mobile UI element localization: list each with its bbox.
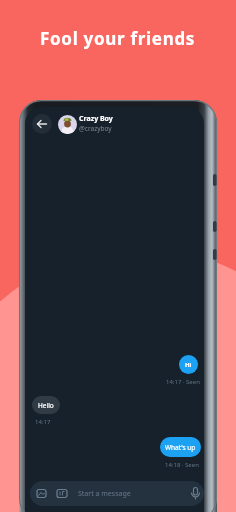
staticText: Hello — [38, 401, 54, 410]
button[interactable]: Start a message — [30, 481, 204, 506]
staticText: Crazy Boy — [79, 114, 113, 124]
staticText: Start a message — [78, 489, 131, 499]
button[interactable]: Hi — [179, 355, 198, 374]
staticText: 14:17 · Seen — [166, 378, 200, 386]
staticText: Fool your friends — [40, 27, 196, 50]
staticText: 14:18 · Seen — [165, 461, 199, 469]
staticText: 14:17 — [35, 418, 51, 426]
button[interactable] — [58, 115, 77, 134]
staticText: Hi — [185, 361, 192, 369]
staticText: @crazyboy — [79, 124, 112, 133]
staticText: What's up — [165, 443, 196, 452]
button[interactable]: Hello — [32, 396, 60, 414]
button[interactable] — [32, 114, 52, 134]
button[interactable]: What's up — [160, 437, 201, 457]
